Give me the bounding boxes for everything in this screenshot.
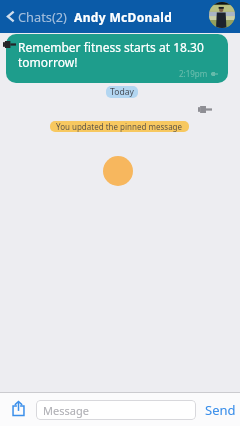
button[interactable]: You updated the pinned message	[50, 121, 189, 132]
staticText: Message	[43, 403, 89, 418]
staticText: Chats(2)	[18, 8, 67, 25]
staticText: Andy McDonald	[74, 9, 173, 25]
staticText: Remember fitness starts at 18.30 tomorro…	[18, 39, 218, 70]
button[interactable]: Share	[0, 393, 36, 426]
button[interactable]: Message	[36, 400, 196, 420]
button[interactable]: Today	[106, 86, 138, 98]
button[interactable]: Remember fitness starts at 18.30 tomorro…	[6, 34, 228, 83]
staticText: Send	[205, 401, 236, 419]
button[interactable]: Pinned message	[194, 102, 216, 117]
button[interactable]: Chats(2)	[4, 4, 70, 29]
button[interactable]: Contact profile	[209, 2, 235, 28]
staticText: You updated the pinned message	[56, 121, 183, 132]
button[interactable]: Send	[196, 393, 240, 426]
staticText: Today	[110, 86, 134, 98]
staticText: 2:19pm	[179, 68, 208, 79]
button[interactable]: Unpin message	[0, 37, 19, 52]
